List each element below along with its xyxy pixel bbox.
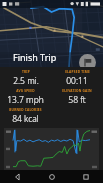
staticText: BURNED CALORIES (9, 108, 42, 112)
button[interactable]: ELAPSED TIME (51, 70, 103, 87)
button[interactable]: AVG SPEED (0, 89, 51, 106)
button[interactable]: BURNED CALORIES (0, 108, 51, 125)
staticText: AVG SPEED (16, 89, 35, 93)
staticText: Finish Trip (13, 51, 57, 63)
button[interactable]: TRIP (0, 70, 51, 87)
staticText: 2.5 mi. (13, 75, 39, 87)
staticText: ELAPSED TIME (65, 70, 90, 74)
button[interactable]: Recent apps (69, 170, 103, 183)
staticText: 58 ft (68, 94, 86, 106)
button[interactable]: Finish trip (79, 54, 96, 71)
button[interactable]: Back (0, 170, 35, 183)
staticText: TRIP (22, 70, 30, 74)
staticText: 00:11 (66, 75, 88, 87)
staticText: 84 kcal (12, 113, 39, 125)
staticText: 13.7 mph (7, 94, 44, 106)
button[interactable] (4, 128, 99, 170)
button[interactable]: ELEVATION GAIN (51, 89, 103, 106)
button[interactable]: Home (35, 170, 69, 183)
button[interactable] (0, 0, 103, 67)
staticText: ELEVATION GAIN (62, 89, 92, 93)
